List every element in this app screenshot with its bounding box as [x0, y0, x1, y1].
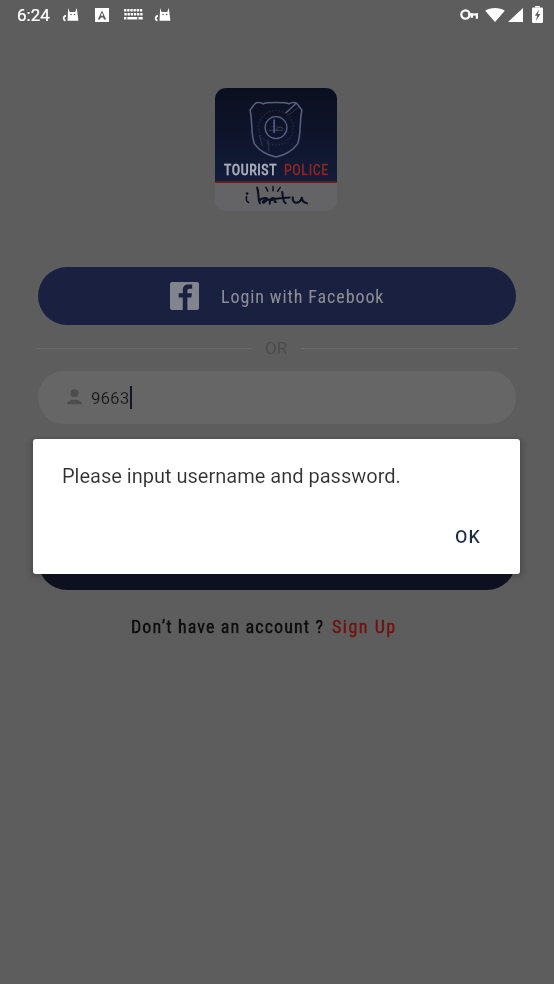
- staticText: 9663: [91, 388, 130, 408]
- button[interactable]: LOGIN: [38, 532, 516, 590]
- other: Wi-Fi: [485, 7, 505, 22]
- staticText: 6:24: [17, 5, 50, 25]
- other: Battery charging: [532, 6, 543, 23]
- staticText: Don’t have an account ?: [131, 616, 325, 637]
- other: Mobile signal: [508, 8, 523, 22]
- button[interactable]: 9663: [38, 371, 516, 424]
- staticText: TOURIST: [224, 162, 278, 178]
- button[interactable]: Sign Up: [325, 616, 397, 637]
- staticText: Please input username and password.: [62, 464, 401, 487]
- other: VPN: [460, 9, 478, 20]
- button[interactable]: [38, 440, 516, 493]
- staticText: OR: [265, 338, 288, 358]
- staticText: OK: [455, 526, 481, 547]
- staticText: Sign Up: [332, 616, 397, 637]
- staticText: POLICE: [284, 162, 329, 178]
- button[interactable]: OK: [455, 526, 481, 547]
- button[interactable]: Login with Facebook: [38, 267, 516, 325]
- staticText: Login with Facebook: [221, 286, 385, 307]
